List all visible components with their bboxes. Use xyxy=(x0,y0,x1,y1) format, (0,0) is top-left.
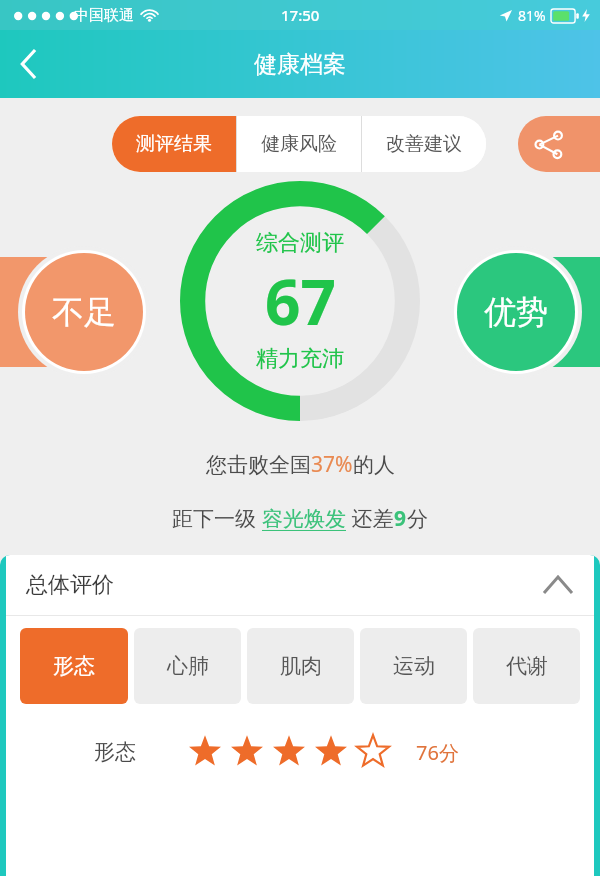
staticText: 17:50 xyxy=(281,5,320,25)
button[interactable]: 不足 xyxy=(25,253,143,371)
button[interactable]: 健康风险 xyxy=(237,116,361,172)
staticText: 形态 xyxy=(94,739,136,765)
staticText: 分 xyxy=(407,506,428,532)
staticText: 37% xyxy=(311,450,353,479)
staticText: 测评结果 xyxy=(136,132,212,156)
button[interactable]: 肌肉 xyxy=(247,628,354,704)
button[interactable]: 测评结果 xyxy=(112,116,236,172)
staticText: 距下一级 xyxy=(172,504,262,533)
button[interactable]: 形态 xyxy=(20,628,128,704)
staticText: 健康档案 xyxy=(254,50,346,79)
button[interactable]: 总体评价 xyxy=(6,555,594,615)
staticText: 您击败全国 xyxy=(206,452,311,478)
staticText: 运动 xyxy=(393,653,435,679)
staticText: 健康风险 xyxy=(261,132,337,156)
button[interactable]: 优势 xyxy=(457,253,575,371)
staticText: 总体评价 xyxy=(26,571,114,599)
staticText: 综合测评 xyxy=(256,229,344,257)
button[interactable]: 代谢 xyxy=(473,628,580,704)
button[interactable]: 改善建议 xyxy=(362,116,486,172)
staticText: 中国联通 xyxy=(74,6,134,25)
button[interactable]: 运动 xyxy=(360,628,467,704)
staticText: 形态 xyxy=(53,653,95,679)
staticText: 76分 xyxy=(416,739,459,766)
staticText: 心肺 xyxy=(167,653,209,679)
staticText: 还差 xyxy=(346,504,394,533)
staticText: 代谢 xyxy=(506,653,548,679)
button[interactable]: Back xyxy=(0,35,58,93)
staticText: 不足 xyxy=(52,292,116,332)
button[interactable]: 形态 xyxy=(6,722,594,782)
staticText: 改善建议 xyxy=(386,132,462,156)
staticText: 肌肉 xyxy=(280,653,322,679)
staticText: 67 xyxy=(265,259,336,343)
staticText: 精力充沛 xyxy=(256,345,344,373)
button[interactable]: Share xyxy=(518,116,600,172)
staticText: 容光焕发 xyxy=(262,506,346,532)
staticText: 的人 xyxy=(353,452,395,478)
other: Collapse xyxy=(544,577,572,593)
staticText: 81% xyxy=(518,6,546,25)
button[interactable]: 心肺 xyxy=(134,628,241,704)
button[interactable]: 综合测评 xyxy=(180,181,420,421)
staticText: 优势 xyxy=(484,292,548,332)
staticText: 9 xyxy=(394,504,407,533)
